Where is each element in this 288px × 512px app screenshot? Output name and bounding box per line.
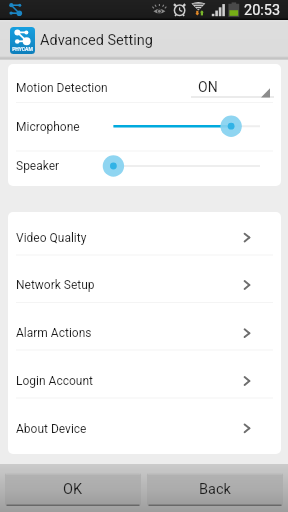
staticText: Back [199, 481, 231, 498]
staticText: Speaker [16, 159, 60, 173]
button[interactable]: Speaker [8, 151, 281, 186]
staticText: Motion Detection [16, 81, 108, 95]
staticText: OK [63, 481, 83, 498]
staticText: Network Setup [16, 278, 95, 292]
staticText: Login Account [16, 374, 93, 388]
button[interactable]: Motion Detection [8, 64, 281, 102]
button[interactable]: Network Setup [8, 255, 281, 303]
staticText: About Device [16, 422, 87, 436]
button[interactable]: About Device [8, 398, 281, 454]
staticText: 20:53 [244, 2, 281, 19]
button[interactable]: Video Quality [8, 212, 281, 255]
button[interactable]: Microphone [8, 102, 281, 150]
staticText: Advanced Setting [40, 32, 153, 49]
button[interactable]: Back [147, 473, 283, 506]
button[interactable]: Login Account [8, 350, 281, 398]
button[interactable]: PHYCAM app icon [10, 27, 35, 54]
staticText: Alarm Actions [16, 326, 92, 340]
staticText: ON [198, 79, 218, 95]
button[interactable]: OK [5, 473, 141, 506]
staticText: Video Quality [16, 231, 87, 245]
button[interactable]: Alarm Actions [8, 303, 281, 351]
staticText: PHYCAM [12, 46, 33, 52]
staticText: Microphone [16, 120, 80, 134]
